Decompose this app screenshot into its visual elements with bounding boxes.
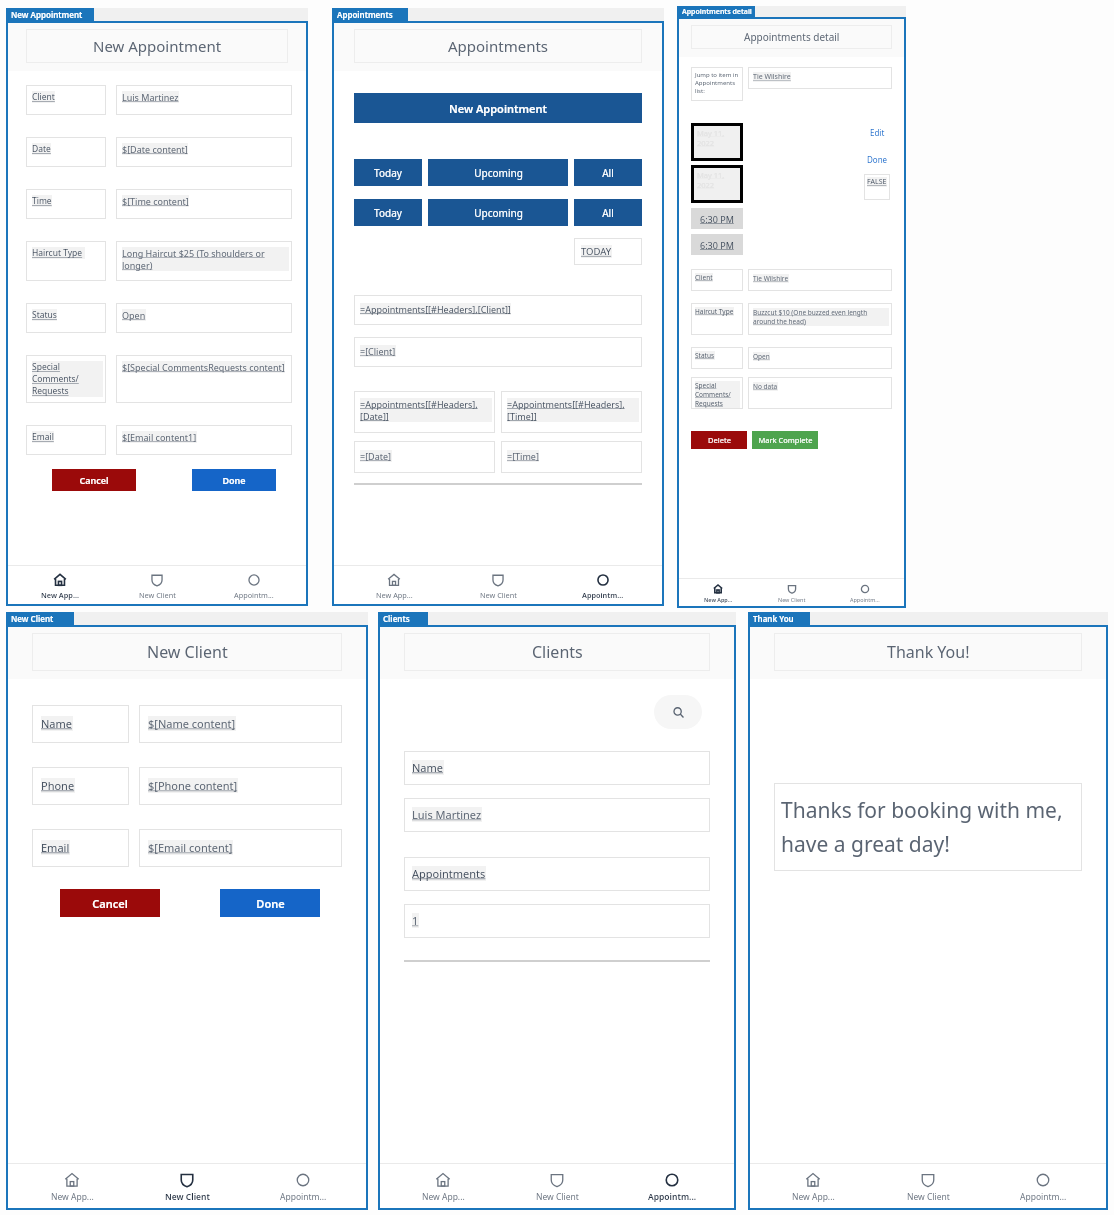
- button[interactable]: Status: [691, 347, 743, 369]
- button[interactable]: $[Email content]: [139, 829, 342, 867]
- button[interactable]: Email: [26, 425, 106, 455]
- button[interactable]: Open: [116, 303, 292, 333]
- button[interactable]: New Client: [32, 633, 342, 671]
- button[interactable]: All: [574, 159, 642, 186]
- button[interactable]: Jump to item in Appointments list:: [691, 67, 743, 101]
- button[interactable]: Upcoming: [428, 159, 568, 186]
- button[interactable]: New Client: [507, 1172, 607, 1203]
- button[interactable]: Phone: [32, 767, 129, 805]
- button[interactable]: $[Date content]: [116, 137, 292, 167]
- staticText: TODAY: [581, 245, 612, 258]
- button[interactable]: 1: [404, 904, 710, 938]
- button[interactable]: Appointments: [332, 8, 408, 21]
- button[interactable]: New App...: [393, 1172, 493, 1203]
- button[interactable]: $[Time content]: [116, 189, 292, 219]
- button[interactable]: Today: [354, 159, 422, 186]
- button[interactable]: No data: [748, 377, 892, 409]
- button[interactable]: Appointm...: [993, 1172, 1093, 1203]
- button[interactable]: =[Time]: [501, 441, 642, 473]
- button[interactable]: New Client: [137, 1172, 237, 1203]
- button[interactable]: Appointments: [354, 29, 642, 63]
- button[interactable]: New App...: [351, 573, 437, 600]
- button[interactable]: New Appointment: [6, 8, 94, 21]
- button[interactable]: Long Haircut $25 (To shoulders or longer…: [116, 241, 292, 281]
- button[interactable]: 6:30 PM: [691, 234, 743, 255]
- button[interactable]: FALSE: [864, 174, 890, 200]
- button[interactable]: New App...: [22, 1172, 122, 1203]
- button[interactable]: New App...: [17, 573, 103, 600]
- button[interactable]: Done: [862, 150, 892, 168]
- button[interactable]: =[Date]: [354, 441, 495, 473]
- button[interactable]: Open: [748, 347, 892, 369]
- button[interactable]: Thank You: [748, 612, 810, 625]
- button[interactable]: $[Email content1]: [116, 425, 292, 455]
- button[interactable]: Thank You!: [774, 633, 1082, 671]
- button[interactable]: $[Name content]: [139, 705, 342, 743]
- staticText: Tie Wilshire: [753, 72, 791, 82]
- button[interactable]: New Client: [760, 584, 824, 603]
- staticText: Appointments detail: [744, 30, 840, 44]
- button[interactable]: Appointm...: [253, 1172, 353, 1203]
- button[interactable]: Email: [32, 829, 129, 867]
- button[interactable]: $[Special CommentsRequests content]: [116, 355, 292, 403]
- button[interactable]: =Appointments[[#Headers],[Date]]: [354, 391, 495, 433]
- button[interactable]: Clients: [378, 612, 428, 625]
- button[interactable]: Appointments detail: [677, 6, 755, 17]
- button[interactable]: Done: [220, 889, 320, 917]
- button[interactable]: $[Phone content]: [139, 767, 342, 805]
- button[interactable]: Appointm...: [833, 584, 897, 603]
- button[interactable]: Client: [26, 85, 106, 115]
- button[interactable]: Special Comments/Requests: [691, 377, 743, 409]
- staticText: =Appointments[[#Headers],[Client]]: [360, 303, 511, 315]
- staticText: $[Email content1]: [122, 431, 197, 443]
- button[interactable]: Appointments detail: [691, 25, 892, 49]
- button[interactable]: Haircut Type: [691, 303, 743, 335]
- button[interactable]: =Appointments[[#Headers],[Client]]: [354, 295, 642, 325]
- button[interactable]: Luis Martinez: [116, 85, 292, 115]
- button[interactable]: New App...: [763, 1172, 863, 1203]
- button[interactable]: Today: [354, 199, 422, 226]
- button[interactable]: New Client: [455, 573, 541, 600]
- button[interactable]: Cancel: [60, 889, 160, 917]
- button[interactable]: New App...: [686, 584, 750, 603]
- button[interactable]: New Appointment: [26, 29, 288, 63]
- button[interactable]: Name: [404, 751, 710, 785]
- button[interactable]: Appointm...: [622, 1172, 722, 1203]
- button[interactable]: Status: [26, 303, 106, 333]
- button[interactable]: Client: [691, 269, 743, 291]
- staticText: Thanks for booking with me, have a great…: [781, 796, 1075, 858]
- button[interactable]: New Client: [114, 573, 200, 600]
- staticText: Clients: [532, 641, 583, 663]
- button[interactable]: TODAY: [574, 238, 642, 265]
- button[interactable]: Buzzcut $10 (One buzzed even length arou…: [748, 303, 892, 335]
- button[interactable]: Tie Wilshire: [748, 269, 892, 291]
- button[interactable]: Time: [26, 189, 106, 219]
- button[interactable]: Name: [32, 705, 129, 743]
- button[interactable]: Mark Complete: [752, 431, 818, 449]
- button[interactable]: New Client: [6, 612, 74, 625]
- button[interactable]: Appointments: [404, 857, 710, 891]
- button[interactable]: Edit: [862, 123, 892, 141]
- button[interactable]: Clients: [404, 633, 710, 671]
- button[interactable]: New Client: [878, 1172, 978, 1203]
- button[interactable]: Appointm...: [211, 573, 297, 600]
- button[interactable]: Done: [192, 469, 276, 491]
- button[interactable]: Haircut Type: [26, 241, 106, 281]
- button[interactable]: Search: [654, 695, 702, 729]
- button[interactable]: Upcoming: [428, 199, 568, 226]
- button[interactable]: Date: [26, 137, 106, 167]
- button[interactable]: Tie Wilshire: [748, 67, 892, 89]
- button[interactable]: Luis Martinez: [404, 798, 710, 832]
- button[interactable]: =[Client]: [354, 337, 642, 367]
- button[interactable]: Cancel: [52, 469, 136, 491]
- button[interactable]: Thanks for booking with me, have a great…: [774, 783, 1082, 871]
- button[interactable]: New Appointment: [354, 93, 642, 123]
- button[interactable]: Special Comments/Requests: [26, 355, 106, 403]
- button[interactable]: Delete: [691, 431, 747, 449]
- button[interactable]: All: [574, 199, 642, 226]
- button[interactable]: Appointm...: [560, 573, 646, 600]
- button[interactable]: =Appointments[[#Headers],[Time]]: [501, 391, 642, 433]
- button[interactable]: 6:30 PM: [691, 208, 743, 229]
